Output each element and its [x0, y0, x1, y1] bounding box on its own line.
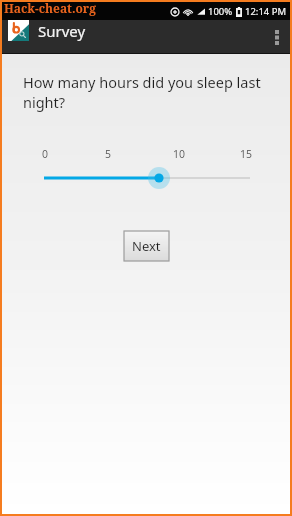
staticText: 10 [173, 147, 186, 161]
staticText: 100% [208, 5, 233, 18]
staticText: 0 [42, 147, 49, 161]
staticText: Hack-cheat.org [4, 0, 96, 16]
button[interactable]: 0 [2, 147, 290, 197]
other: Survey app icon [8, 20, 29, 41]
staticText: 12:14 PM [245, 5, 287, 18]
staticText: Survey [38, 21, 86, 41]
button[interactable]: Next [124, 231, 169, 261]
staticText: How many hours did you sleep last night? [23, 72, 274, 113]
button[interactable]: More options [264, 20, 290, 54]
staticText: Next [132, 237, 161, 255]
staticText: 5 [105, 147, 112, 161]
staticText: 15 [240, 147, 253, 161]
